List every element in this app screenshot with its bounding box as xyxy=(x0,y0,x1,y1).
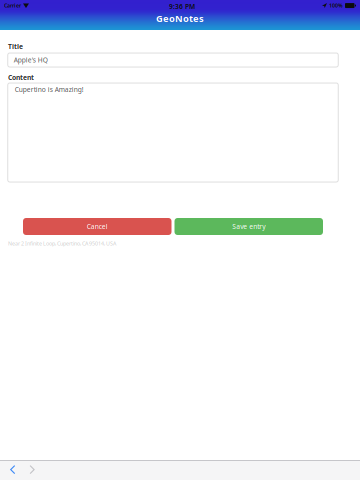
staticText: Content xyxy=(8,73,34,82)
staticText: Title xyxy=(8,42,23,51)
staticText: Near 2 Infinite Loop, Cupertino, CA 9501… xyxy=(8,240,116,247)
button[interactable]: Back xyxy=(4,461,23,480)
staticText: Cupertino is Amazing! xyxy=(15,85,84,94)
button[interactable]: Save entry xyxy=(174,218,323,235)
staticText: Cancel xyxy=(87,222,108,231)
staticText: 100% xyxy=(329,2,343,9)
staticText: GeoNotes xyxy=(156,12,204,25)
staticText: Carrier xyxy=(4,2,21,9)
staticText: Apple's HQ xyxy=(14,56,48,64)
staticText: Save entry xyxy=(232,222,265,231)
staticText: 9:36 PM xyxy=(169,2,195,11)
button[interactable]: Forward xyxy=(23,461,42,480)
button[interactable]: Cancel xyxy=(23,218,171,235)
